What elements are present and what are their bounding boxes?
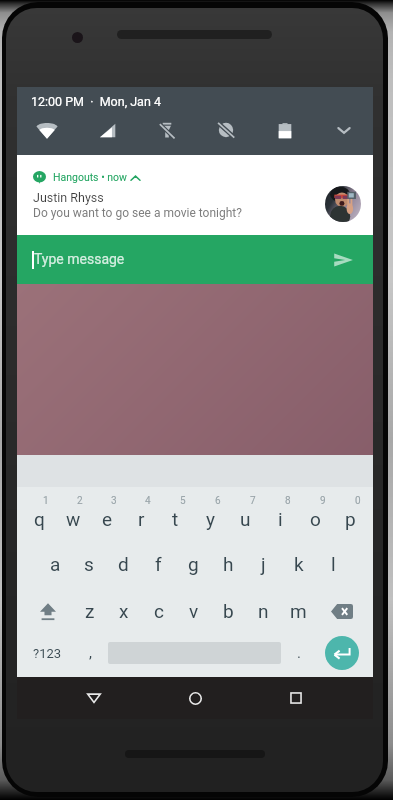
button[interactable]: x <box>107 581 141 629</box>
button[interactable]: a <box>38 534 72 581</box>
staticText: 7 <box>250 495 256 507</box>
staticText: r <box>138 508 145 530</box>
staticText: l <box>331 553 336 575</box>
staticText: q <box>34 508 45 530</box>
button[interactable]: 6 <box>193 487 228 534</box>
button[interactable]: g <box>176 534 211 581</box>
staticText: a <box>50 553 61 575</box>
staticText: b <box>223 600 234 622</box>
staticText: , <box>89 644 92 662</box>
staticText: v <box>189 600 199 622</box>
staticText: x <box>119 600 129 622</box>
staticText: h <box>223 553 234 575</box>
staticText: Hangouts • now <box>53 171 127 183</box>
button[interactable]: k <box>281 534 316 581</box>
staticText: 2 <box>77 495 83 507</box>
staticText: z <box>85 600 95 622</box>
button[interactable]: 5 <box>158 487 193 534</box>
button[interactable]: Auto-rotate off <box>196 113 255 147</box>
button[interactable]: Expand quick settings <box>314 113 373 147</box>
staticText: 12:00 PM · Mon, Jan 4 <box>31 94 161 109</box>
button[interactable]: . <box>281 629 316 677</box>
staticText: 0 <box>355 495 361 507</box>
button[interactable]: Enter <box>316 629 368 677</box>
button[interactable]: h <box>211 534 246 581</box>
button[interactable]: m <box>281 581 316 629</box>
staticText: 1 <box>43 495 49 507</box>
button[interactable]: Wi-Fi <box>17 113 77 147</box>
button[interactable]: Battery <box>255 113 314 147</box>
button[interactable]: 0 <box>333 487 368 534</box>
button[interactable]: Recents <box>272 677 320 719</box>
button[interactable]: n <box>246 581 281 629</box>
button[interactable]: ?123 <box>22 629 73 677</box>
button[interactable]: Type message <box>17 235 373 284</box>
button[interactable]: Home <box>171 677 219 719</box>
staticText: Justin Rhyss <box>33 190 104 205</box>
button[interactable]: v <box>176 581 211 629</box>
button[interactable]: f <box>141 534 176 581</box>
staticText: c <box>154 600 164 622</box>
button[interactable]: , <box>73 629 108 677</box>
staticText: g <box>188 553 199 575</box>
staticText: y <box>206 508 215 530</box>
staticText: t <box>172 508 179 530</box>
button[interactable]: Backspace <box>316 581 368 629</box>
staticText: i <box>278 508 283 530</box>
button[interactable]: 9 <box>298 487 333 534</box>
staticText: e <box>102 508 113 530</box>
button[interactable]: j <box>246 534 281 581</box>
button[interactable]: l <box>316 534 351 581</box>
staticText: 5 <box>180 495 186 507</box>
staticText: k <box>294 553 304 575</box>
button[interactable]: 2 <box>56 487 90 534</box>
button[interactable]: 1 <box>22 487 56 534</box>
button[interactable]: Back <box>70 677 118 719</box>
staticText: s <box>84 553 94 575</box>
button[interactable]: 4 <box>124 487 158 534</box>
staticText: Type message <box>34 251 125 267</box>
staticText: n <box>258 600 269 622</box>
staticText: . <box>297 644 301 662</box>
staticText: p <box>345 508 356 530</box>
button[interactable]: s <box>72 534 106 581</box>
button[interactable]: Shift <box>22 581 73 629</box>
button[interactable]: z <box>73 581 107 629</box>
staticText: 3 <box>111 495 117 507</box>
staticText: u <box>240 508 251 530</box>
button[interactable]: 8 <box>263 487 298 534</box>
staticText: 9 <box>320 495 326 507</box>
button[interactable]: Send <box>331 248 355 272</box>
staticText: f <box>155 553 162 575</box>
button[interactable]: Hangouts • now <box>17 155 373 235</box>
staticText: 6 <box>215 495 221 507</box>
staticText: m <box>290 600 307 622</box>
staticText: j <box>261 553 266 575</box>
button[interactable]: Cellular signal <box>77 113 137 147</box>
button[interactable]: Flashlight off <box>137 113 196 147</box>
staticText: 4 <box>145 495 151 507</box>
button[interactable]: c <box>141 581 176 629</box>
button[interactable]: b <box>211 581 246 629</box>
staticText: o <box>310 508 321 530</box>
staticText: ?123 <box>33 646 62 661</box>
button[interactable]: 7 <box>228 487 263 534</box>
button[interactable]: d <box>106 534 141 581</box>
staticText: Do you want to go see a movie tonight? <box>33 206 242 220</box>
button[interactable]: 3 <box>90 487 124 534</box>
staticText: d <box>118 553 129 575</box>
staticText: 8 <box>285 495 291 507</box>
staticText: w <box>66 508 81 530</box>
